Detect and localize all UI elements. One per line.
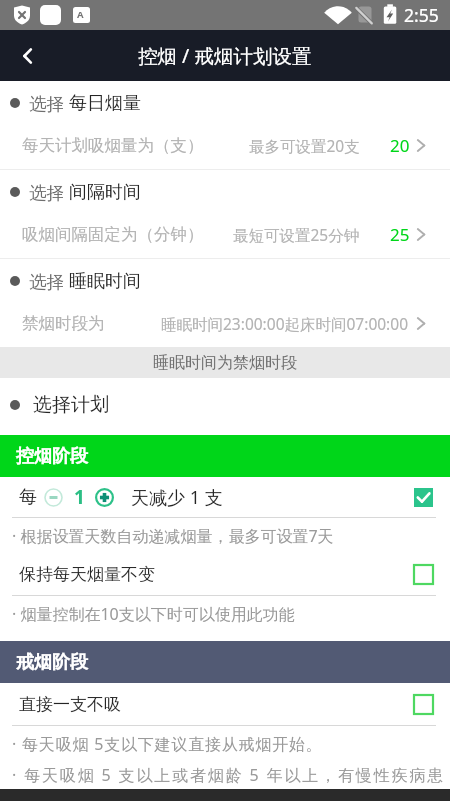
staticText: 睡眠时间 xyxy=(69,270,141,293)
staticText: 选择 xyxy=(29,180,69,204)
staticText: 每天计划吸烟量为（支） xyxy=(22,135,204,156)
button[interactable]: Increase xyxy=(95,488,114,507)
button[interactable]: Decrease xyxy=(44,488,63,507)
button[interactable]: 禁烟时段为 xyxy=(0,303,450,343)
staticText: 每日烟量 xyxy=(69,92,141,115)
button[interactable]: 每天计划吸烟量为（支） xyxy=(0,125,450,165)
staticText: 20 xyxy=(390,134,410,157)
staticText: 1 xyxy=(74,484,85,510)
button[interactable]: 吸烟间隔固定为（分钟） xyxy=(0,214,450,254)
staticText: 控烟阶段 xyxy=(16,445,88,468)
staticText: 每 xyxy=(19,486,37,509)
staticText: 最多可设置20支 xyxy=(249,135,360,156)
staticText: 选择 xyxy=(29,91,69,115)
button[interactable]: Toggle xyxy=(410,691,436,717)
staticText: 天减少 1 支 xyxy=(131,485,223,510)
staticText: A xyxy=(77,8,84,21)
staticText: 2:55 xyxy=(404,3,439,27)
staticText: 选择计划 xyxy=(33,393,109,417)
staticText: · 烟量控制在10支以下时可以使用此功能 xyxy=(12,603,295,625)
staticText: · 根据设置天数自动递减烟量，最多可设置7天 xyxy=(12,525,334,547)
staticText: 睡眠时间为禁烟时段 xyxy=(153,353,297,373)
staticText: · 每天吸烟 5 支以上或者烟龄 5 年以上，有慢性疾病患 xyxy=(12,764,446,786)
staticText: 控烟 / 戒烟计划设置 xyxy=(138,42,312,69)
staticText: 选择 xyxy=(29,269,69,293)
staticText: 吸烟间隔固定为（分钟） xyxy=(22,224,204,245)
staticText: 睡眠时间23:00:00起床时间07:00:00 xyxy=(161,313,409,334)
staticText: 最短可设置25分钟 xyxy=(233,224,360,245)
staticText: 间隔时间 xyxy=(69,181,141,204)
button[interactable]: Toggle xyxy=(410,484,436,510)
staticText: · 每天吸烟 5支以下建议直接从戒烟开始。 xyxy=(12,733,323,755)
staticText: 禁烟时段为 xyxy=(22,313,105,334)
button[interactable]: Toggle xyxy=(410,561,436,587)
staticText: 戒烟阶段 xyxy=(16,651,88,674)
button[interactable]: Back xyxy=(0,30,56,81)
staticText: 25 xyxy=(390,223,410,246)
staticText: 保持每天烟量不变 xyxy=(19,564,155,585)
staticText: 直接一支不吸 xyxy=(19,694,121,715)
